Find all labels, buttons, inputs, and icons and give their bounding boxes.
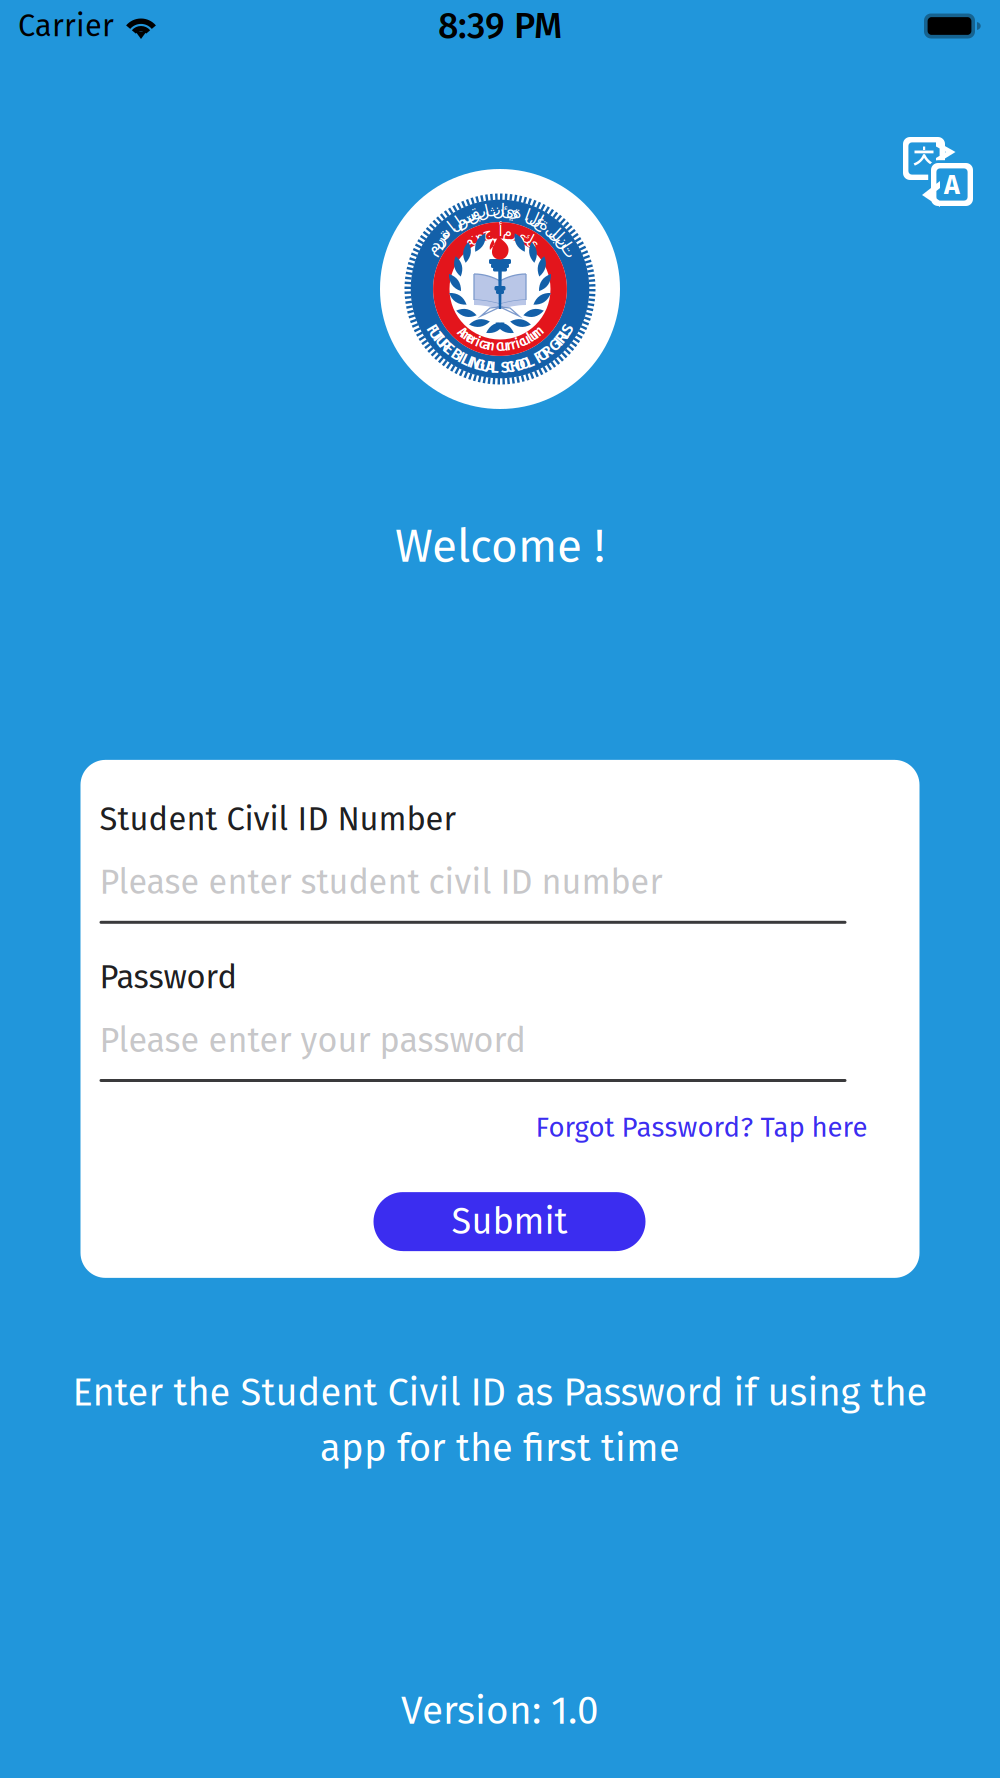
staticText: س (454, 209, 474, 228)
staticText (498, 358, 502, 377)
staticText: O (538, 345, 549, 364)
staticText (485, 201, 489, 221)
staticText: ة (540, 214, 549, 234)
staticText: Forgot Password? Tap here (535, 1111, 867, 1144)
staticText: H (510, 356, 521, 376)
staticText: Please enter your password (99, 1020, 525, 1061)
staticText: ة (513, 202, 522, 222)
staticText: U (430, 324, 440, 343)
staticText: ل (476, 202, 488, 222)
staticText: A (485, 357, 494, 376)
staticText: r (506, 338, 511, 354)
staticText: R (542, 342, 552, 361)
staticText: i (516, 336, 520, 352)
staticText: I (459, 348, 464, 367)
staticText: i (476, 334, 480, 350)
staticText (445, 220, 449, 240)
staticText: u (500, 338, 508, 354)
staticText: S (501, 358, 510, 377)
staticText: I (468, 352, 473, 371)
staticText: L (561, 324, 569, 343)
staticText: R (557, 328, 567, 347)
button[interactable]: Forgot Password? Tap here (535, 1111, 867, 1144)
staticText: U (480, 356, 490, 376)
staticText (520, 203, 524, 223)
staticText (532, 350, 536, 369)
staticText: u (522, 332, 530, 348)
staticText: ة (439, 224, 448, 243)
staticText: ن (557, 232, 569, 251)
staticText: S (563, 320, 572, 339)
staticText: e (466, 330, 473, 346)
staticText: ي (515, 226, 526, 243)
staticText: Carrier (18, 8, 114, 44)
staticText: A (944, 169, 960, 201)
staticText (451, 342, 455, 361)
button[interactable]: Change language (900, 134, 976, 210)
staticText: L (491, 358, 499, 377)
staticText: د (431, 236, 438, 255)
staticText: Welcome ! (395, 519, 605, 574)
staticText: ت (560, 240, 576, 259)
staticText: r (471, 332, 476, 348)
staticText: ي (527, 233, 538, 250)
staticText: L (526, 352, 534, 371)
staticText: ك (521, 229, 533, 246)
staticText: ث (484, 201, 500, 220)
staticText: Please enter student civil ID number (99, 862, 662, 903)
staticText: ه (475, 226, 483, 243)
staticText: Version: 1.0 (401, 1688, 599, 1734)
staticText: A (458, 325, 466, 341)
staticText: ئ (501, 201, 514, 220)
staticText (491, 223, 495, 240)
staticText (549, 339, 553, 358)
staticText: R (440, 335, 450, 355)
staticText: ل (550, 224, 562, 243)
staticText: ا (563, 236, 568, 255)
staticText: T (434, 328, 443, 347)
button[interactable]: Submit (373, 1192, 645, 1251)
staticText: E (445, 339, 453, 358)
staticText: ل (530, 209, 542, 228)
staticText: ر (510, 224, 517, 241)
staticText: c (479, 336, 485, 352)
staticText: ق (466, 205, 479, 224)
staticText: U (437, 332, 447, 351)
staticText: ر (433, 232, 441, 251)
staticText: ا (500, 200, 505, 220)
staticText: م (502, 223, 511, 240)
staticText: ب (552, 228, 568, 247)
staticText: F (429, 320, 437, 339)
staticText: Enter the Student Civil ID as Password i… (72, 1370, 927, 1415)
staticText: م (426, 240, 436, 259)
staticText: N (470, 354, 481, 373)
staticText: B (452, 345, 462, 364)
staticText: r (511, 337, 516, 353)
staticText: ي (506, 201, 519, 221)
staticText: G (475, 355, 485, 374)
staticText: l (528, 330, 532, 346)
staticText: ا (525, 205, 530, 224)
staticText: C (506, 357, 515, 376)
staticText: أ (498, 222, 502, 240)
staticText: c (519, 334, 525, 350)
staticText (494, 338, 497, 354)
staticText: ت (460, 207, 476, 226)
staticText: Submit (451, 1200, 567, 1243)
staticText: Password (99, 958, 237, 997)
staticText: ل (449, 214, 461, 234)
staticText: 8:39 PM (438, 4, 562, 48)
staticText: F (535, 348, 543, 367)
staticText: ب (470, 203, 486, 223)
staticText: O (519, 354, 530, 373)
staticText: n (487, 338, 495, 354)
staticText: I (556, 332, 561, 351)
staticText: ن (491, 200, 503, 220)
staticText: ل (526, 207, 538, 226)
staticText: u (530, 327, 538, 343)
staticText (547, 217, 551, 237)
staticText: app for the first time (320, 1425, 680, 1471)
staticText: م (463, 233, 472, 250)
staticText: ل (547, 220, 559, 240)
staticText: Student Civil ID Number (99, 800, 456, 839)
